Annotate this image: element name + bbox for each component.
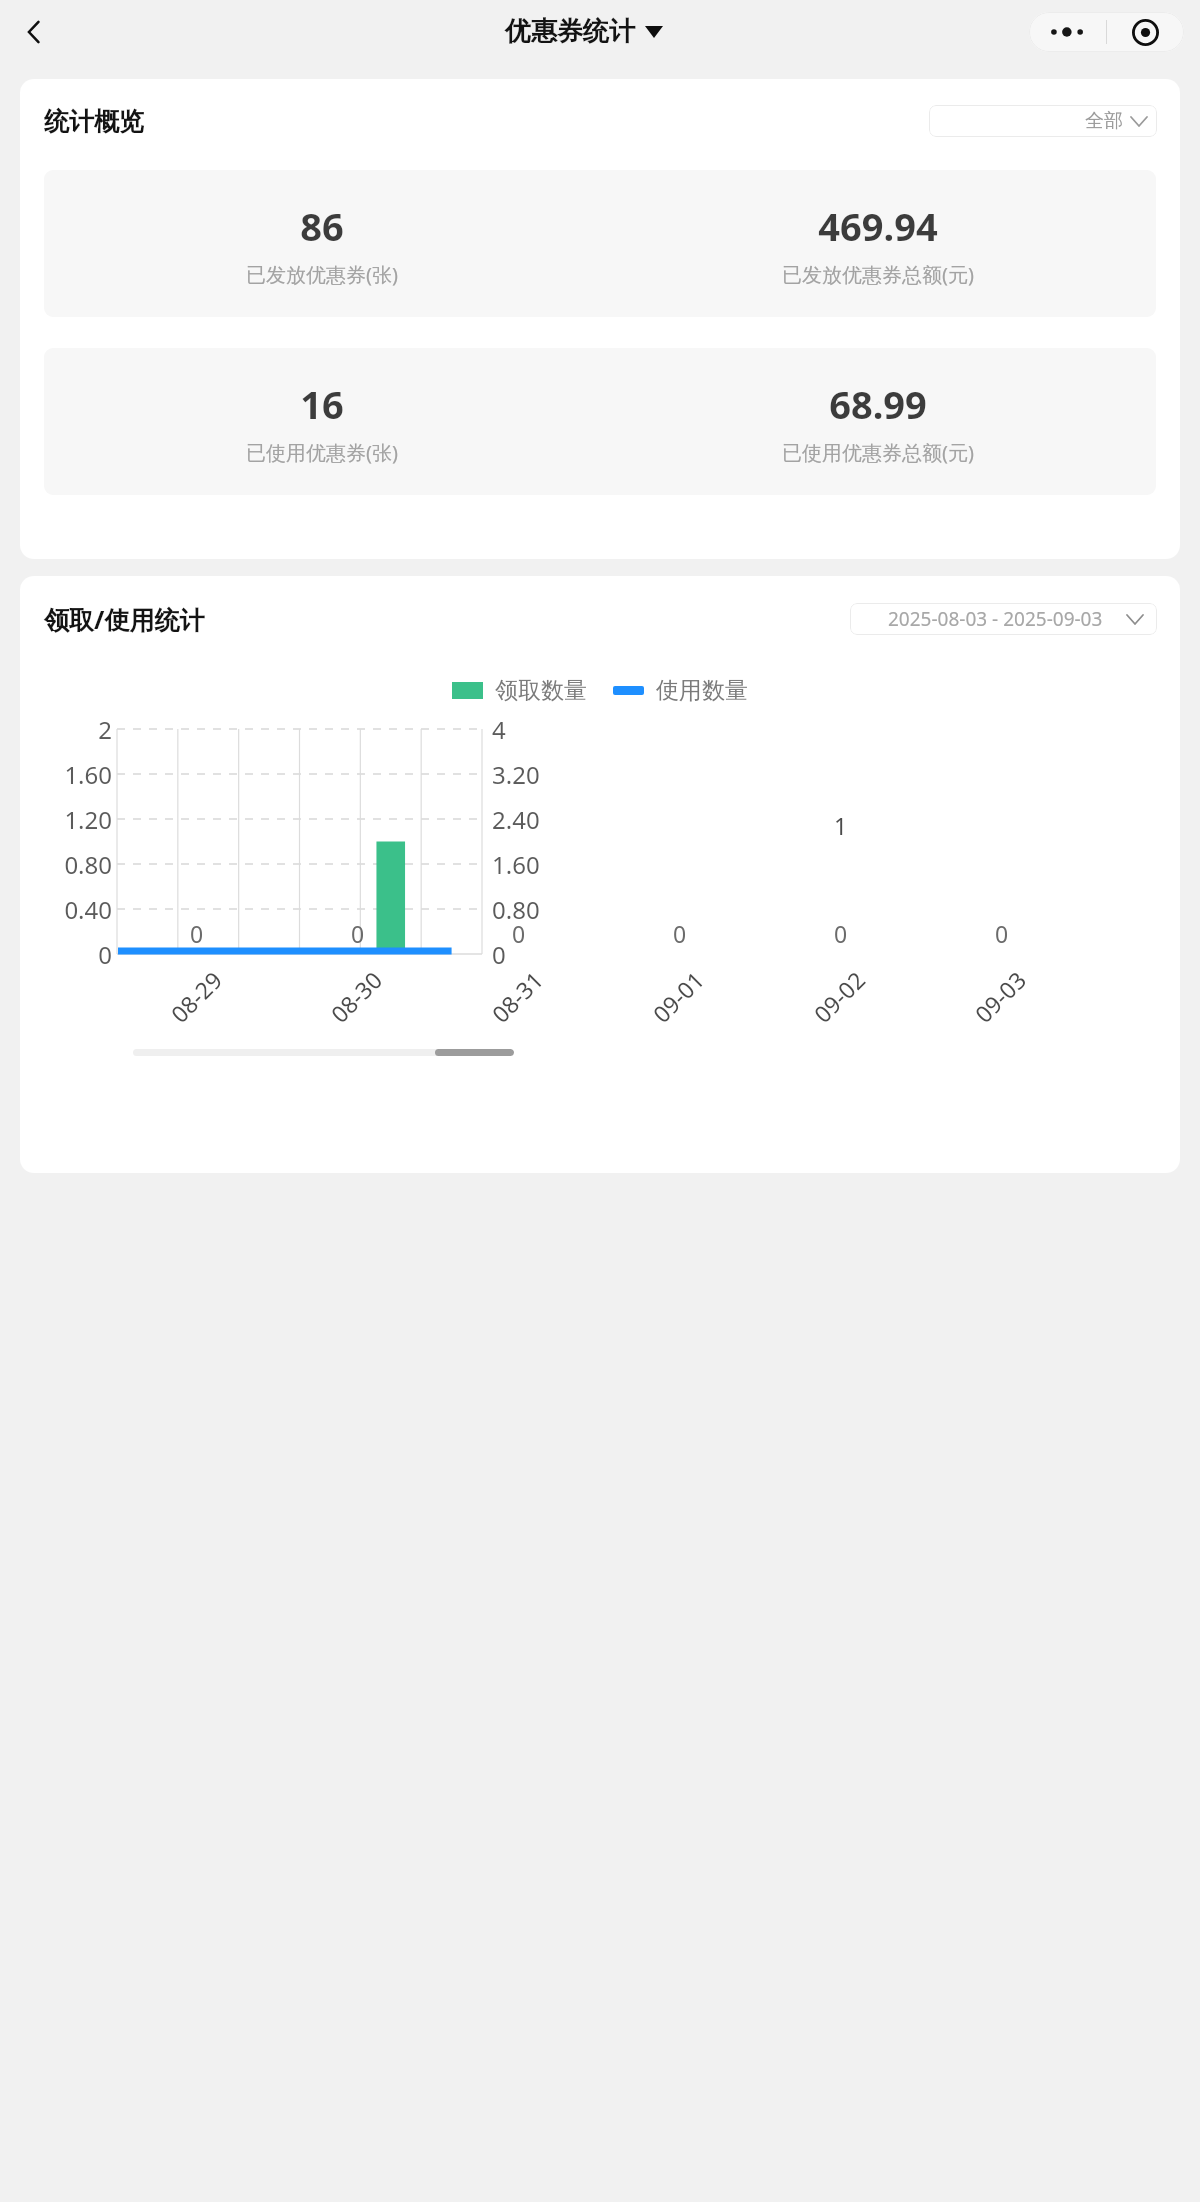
staticText: 2 [26,713,112,746]
staticText: 统计概览 [44,106,144,137]
staticText: 0 [190,918,204,949]
staticText: 1.60 [492,848,578,881]
staticText: 3.20 [492,758,578,791]
staticText: 09-02 [807,964,872,1029]
staticText: 1.60 [26,758,112,791]
staticText: 0 [995,918,1009,949]
staticText: 1 [834,810,848,841]
staticText: 08-31 [485,964,550,1029]
staticText: 0 [26,938,112,971]
staticText: 已使用优惠券总额(元) [782,439,974,466]
staticText: 领取数量 [495,676,587,705]
staticText: 09-03 [968,964,1033,1029]
staticText: 2025-08-03 - 2025-09-03 [888,606,1103,632]
staticText: 0 [673,918,687,949]
staticText: 09-01 [646,964,711,1029]
button[interactable]: 全部 [929,105,1157,137]
staticText: 469.94 [818,200,938,252]
staticText: 4 [492,713,578,746]
staticText: 16 [300,378,344,430]
staticText: 08-30 [324,964,389,1029]
staticText: 已使用优惠券(张) [246,439,398,466]
staticText: 使用数量 [656,676,748,705]
staticText: 已发放优惠券总额(元) [782,261,974,288]
staticText: 0 [492,938,578,971]
staticText: 0.40 [26,893,112,926]
staticText: 0 [351,918,365,949]
staticText: 全部 [1085,109,1123,133]
staticText: 0.80 [492,893,578,926]
button[interactable]: Close [1107,12,1184,52]
staticText: 1.20 [26,803,112,836]
button[interactable]: Back [8,6,60,58]
button[interactable]: 优惠券统计 [505,15,663,48]
staticText: 已发放优惠券(张) [246,261,398,288]
staticText: 68.99 [829,378,927,430]
staticText: 0.80 [26,848,112,881]
staticText: 0 [512,918,526,949]
staticText: 08-29 [164,964,229,1029]
staticText: 领取/使用统计 [44,602,205,636]
staticText: 86 [300,200,344,252]
button[interactable]: More options [1029,12,1106,52]
button[interactable]: 2025-08-03 - 2025-09-03 [850,603,1157,635]
staticText: 优惠券统计 [505,15,635,48]
staticText: 2.40 [492,803,578,836]
staticText: 0 [834,918,848,949]
